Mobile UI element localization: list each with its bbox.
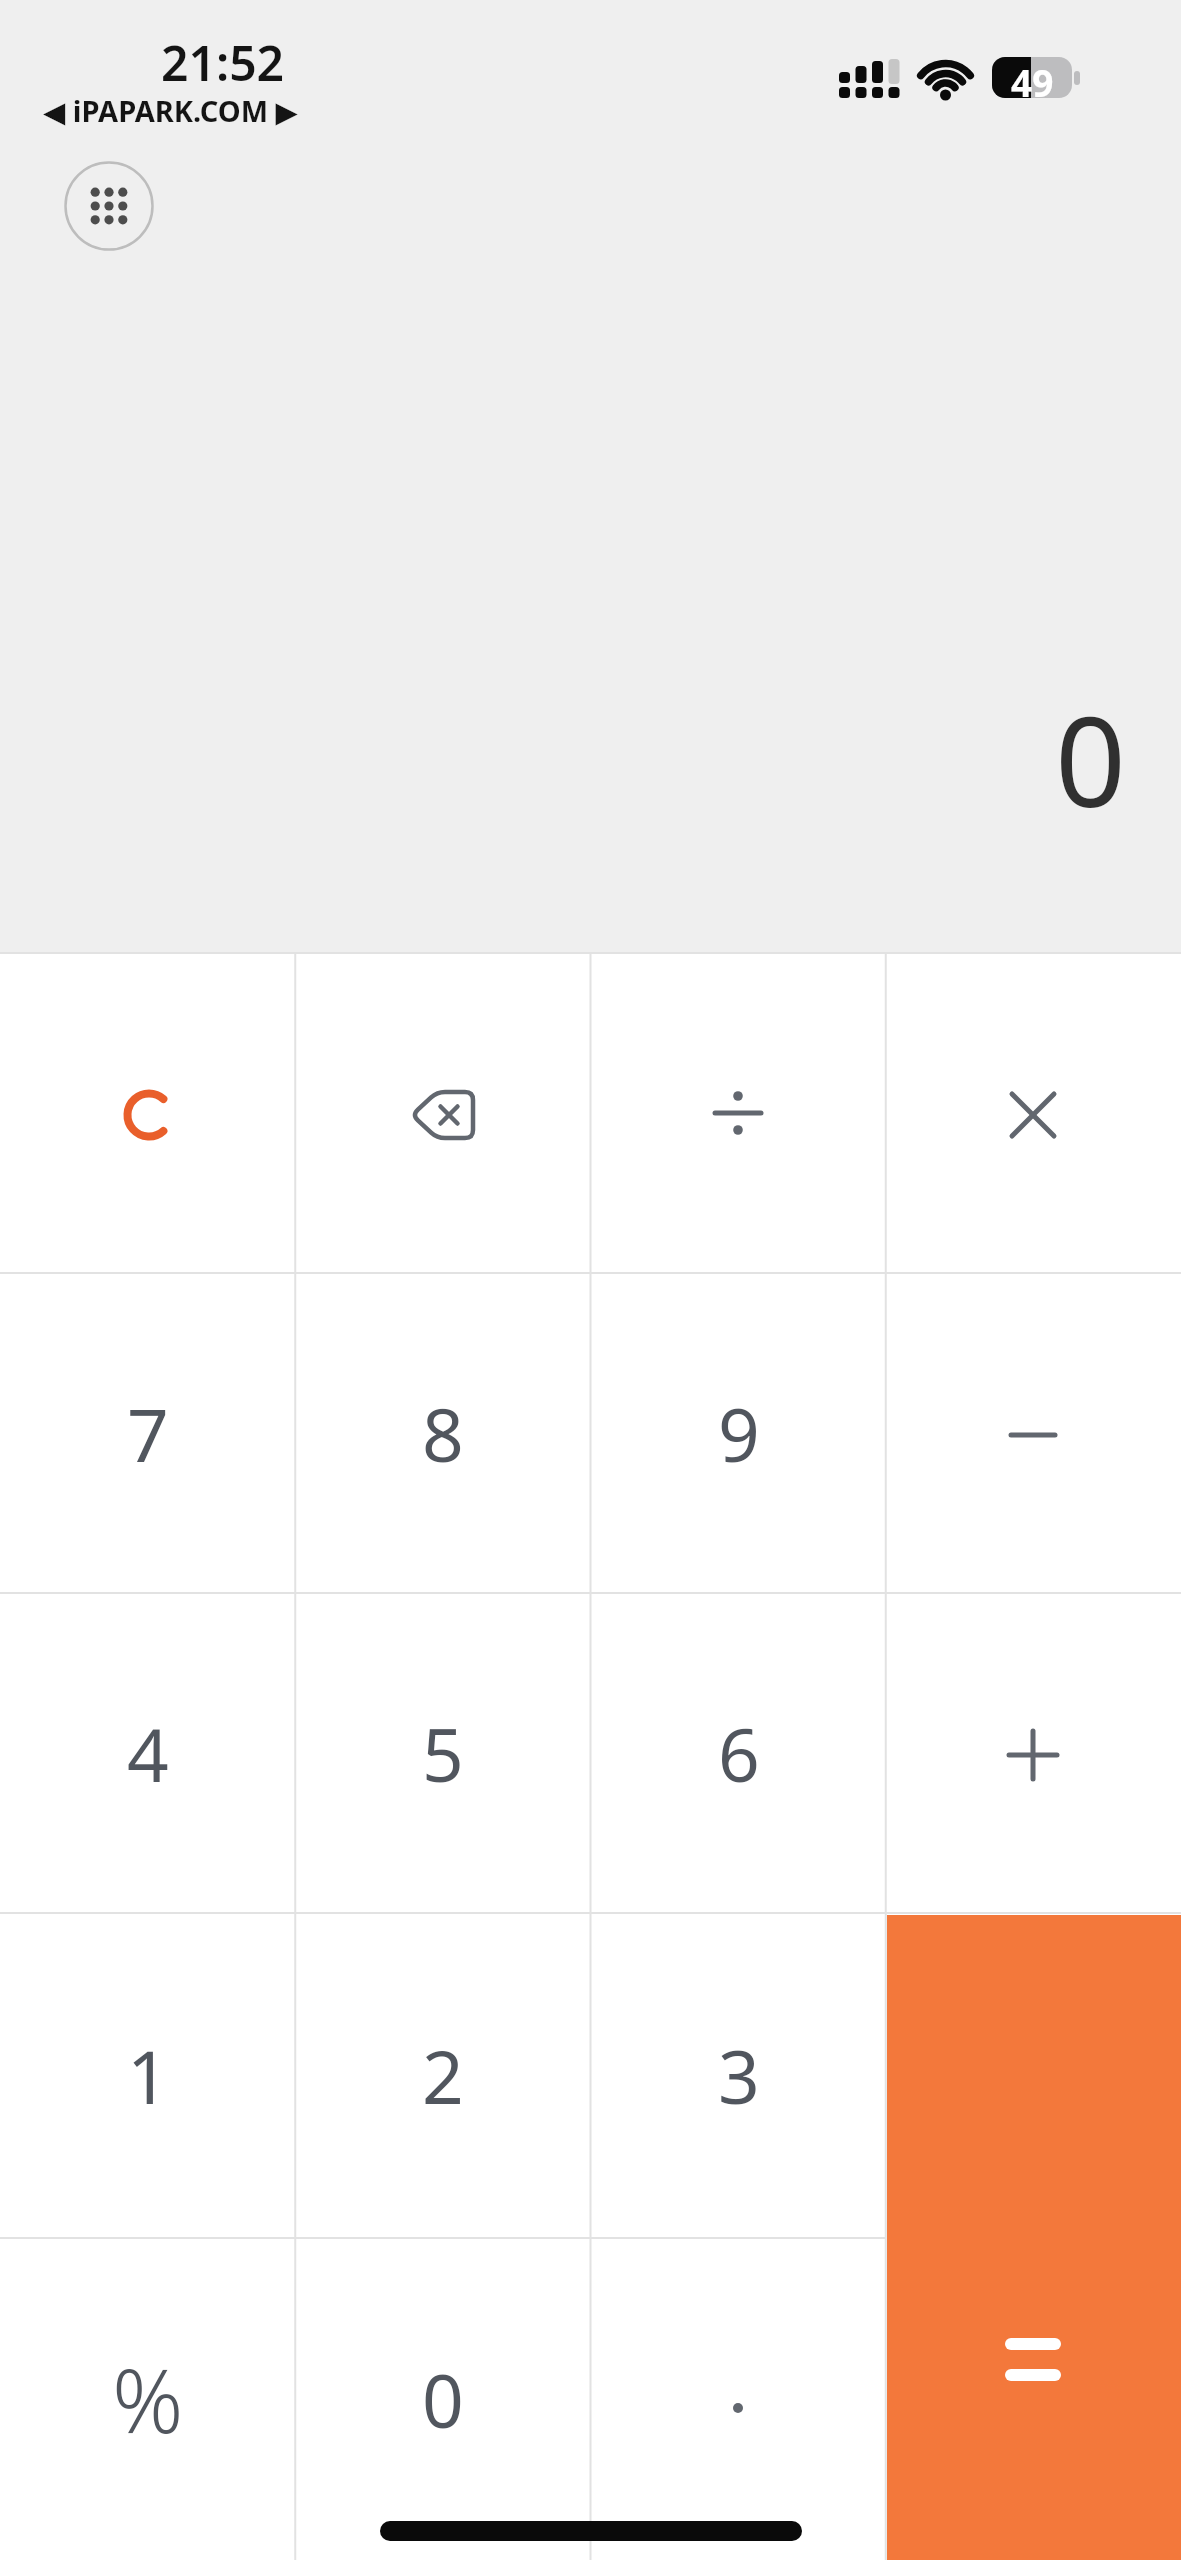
button[interactable] [0,953,295,1273]
staticText: % [112,2339,184,2459]
button[interactable] [591,2238,886,2560]
button[interactable]: 6 [591,1593,886,1913]
button[interactable]: 1 [0,1913,295,2238]
button[interactable]: 0 [295,2238,590,2560]
button[interactable]: 4 [0,1593,295,1913]
staticText: 1 [127,2026,169,2125]
button[interactable]: 2 [295,1913,590,2238]
button[interactable]: % [0,2238,295,2560]
button[interactable]: 9 [591,1273,886,1593]
staticText: 8 [422,1384,464,1483]
staticText: 0 [1055,674,1126,834]
button[interactable] [591,953,886,1273]
staticText: 21:52 [161,30,285,86]
staticText: 0 [422,2350,464,2449]
staticText: 2 [422,2026,464,2125]
button[interactable]: 3 [591,1913,886,2238]
button[interactable] [295,953,590,1273]
staticText: ◀ iPAPARK.COM ▶ [43,91,298,130]
staticText: 3 [718,2026,760,2125]
button[interactable] [886,953,1181,1273]
button[interactable] [887,1915,1181,2560]
button[interactable]: 8 [295,1273,590,1593]
staticText: 5 [422,1704,464,1803]
staticText: 9 [718,1384,760,1483]
staticText: 7 [127,1384,169,1483]
staticText: 49 [1011,57,1054,98]
button[interactable] [886,1273,1181,1593]
button[interactable] [886,1593,1181,1913]
button[interactable] [65,162,153,250]
staticText: 6 [718,1704,760,1803]
staticText: 4 [127,1704,169,1803]
button[interactable]: 7 [0,1273,295,1593]
button[interactable]: 5 [295,1593,590,1913]
